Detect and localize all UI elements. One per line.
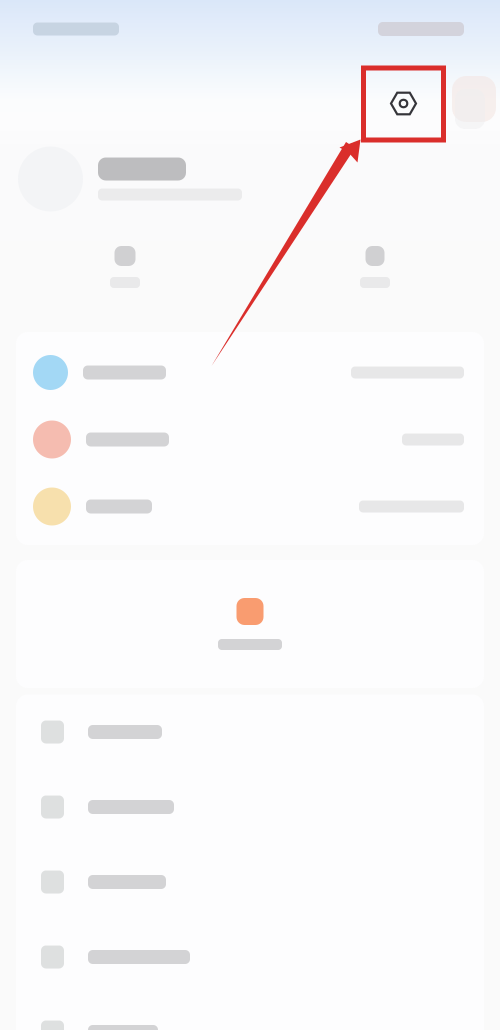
- button[interactable]: [16, 994, 484, 1030]
- button[interactable]: [16, 473, 484, 540]
- button[interactable]: [16, 844, 484, 919]
- button[interactable]: [0, 143, 500, 215]
- button[interactable]: [16, 769, 484, 844]
- button[interactable]: [250, 232, 500, 302]
- button[interactable]: [16, 406, 484, 473]
- button[interactable]: [16, 339, 484, 406]
- button[interactable]: [16, 560, 484, 688]
- button[interactable]: [16, 694, 484, 769]
- button[interactable]: [16, 919, 484, 994]
- button[interactable]: Settings: [361, 65, 446, 142]
- button[interactable]: [0, 232, 250, 302]
